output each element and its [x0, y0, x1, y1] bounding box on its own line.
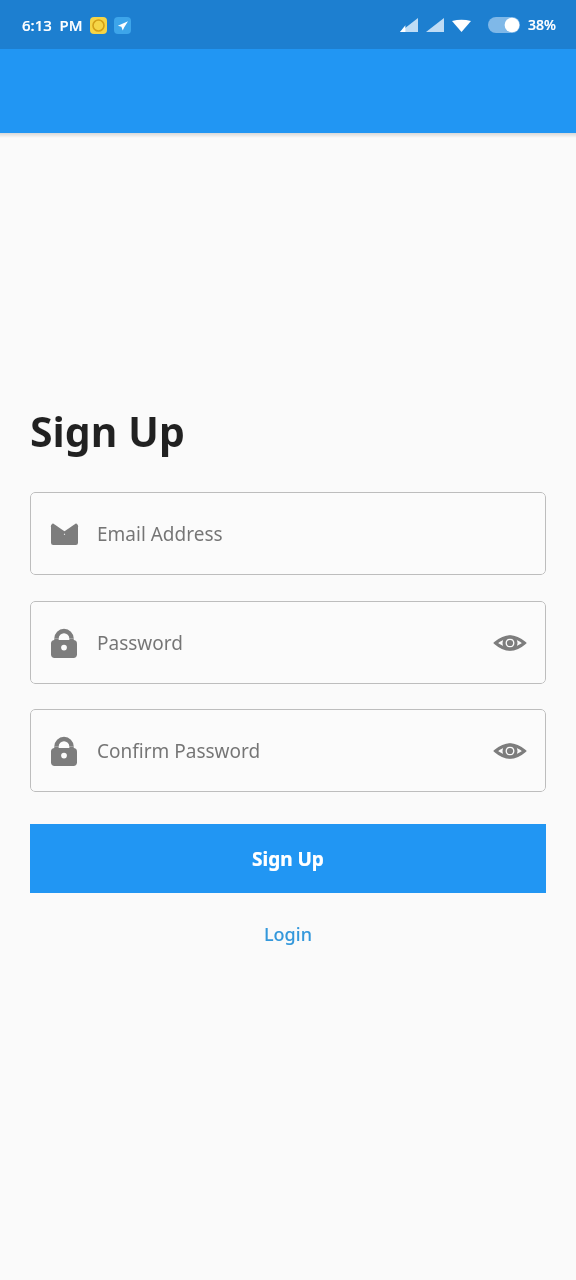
staticText: Password	[97, 630, 492, 656]
staticText: Sign Up	[252, 846, 324, 872]
button[interactable]: Toggle password visibility	[492, 625, 528, 661]
button[interactable]: Login	[0, 914, 576, 954]
button[interactable]: Email Address	[30, 492, 546, 575]
staticText: Sign Up	[30, 403, 185, 459]
staticText: Email Address	[97, 521, 528, 547]
staticText: Login	[264, 922, 312, 947]
staticText: 6:13 PM	[22, 15, 83, 35]
button[interactable]: Toggle password visibility	[492, 733, 528, 769]
staticText: Confirm Password	[97, 738, 492, 764]
button[interactable]: Confirm Password	[30, 709, 546, 792]
button[interactable]: Password	[30, 601, 546, 684]
staticText: 38%	[528, 15, 556, 34]
button[interactable]: Sign Up	[30, 824, 546, 893]
